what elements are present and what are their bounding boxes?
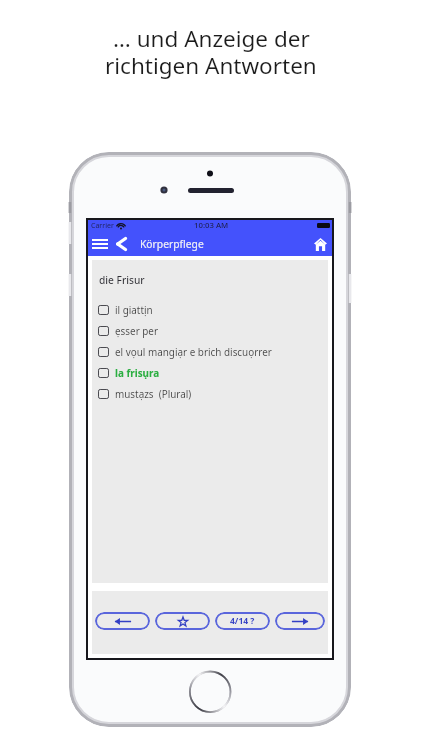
button[interactable]: ẹsser per (98, 320, 328, 341)
staticText: Carrier (91, 221, 114, 231)
staticText: 10:03 AM (194, 220, 229, 231)
button[interactable]: Menu (90, 233, 109, 255)
button[interactable]: mustạzs (Plural) (98, 383, 328, 404)
button[interactable]: Progress (215, 612, 270, 630)
staticText: el vọul mangiạr e brich discuọrrer (115, 345, 272, 358)
staticText: die Frisur (99, 273, 145, 287)
button[interactable]: Next (275, 612, 325, 630)
staticText: 4/14 ? (230, 615, 255, 627)
staticText: mustạzs (Plural) (115, 387, 192, 400)
button[interactable]: Previous (95, 612, 150, 630)
button[interactable]: la frisụra (98, 362, 328, 383)
button[interactable]: el vọul mangiạr e brich discuọrrer (98, 341, 328, 362)
staticText: ẹsser per (115, 324, 159, 337)
staticText: … und Anzeige der (113, 23, 310, 54)
button[interactable]: Favourite (155, 612, 210, 630)
button[interactable]: Home (311, 233, 330, 255)
staticText: Körperpflege (140, 237, 204, 251)
button[interactable]: Back (115, 233, 128, 255)
staticText: il giattịn (115, 303, 153, 316)
staticText: richtigen Antworten (105, 50, 317, 81)
button[interactable]: il giattịn (98, 299, 328, 320)
staticText: la frisụra (115, 366, 160, 379)
